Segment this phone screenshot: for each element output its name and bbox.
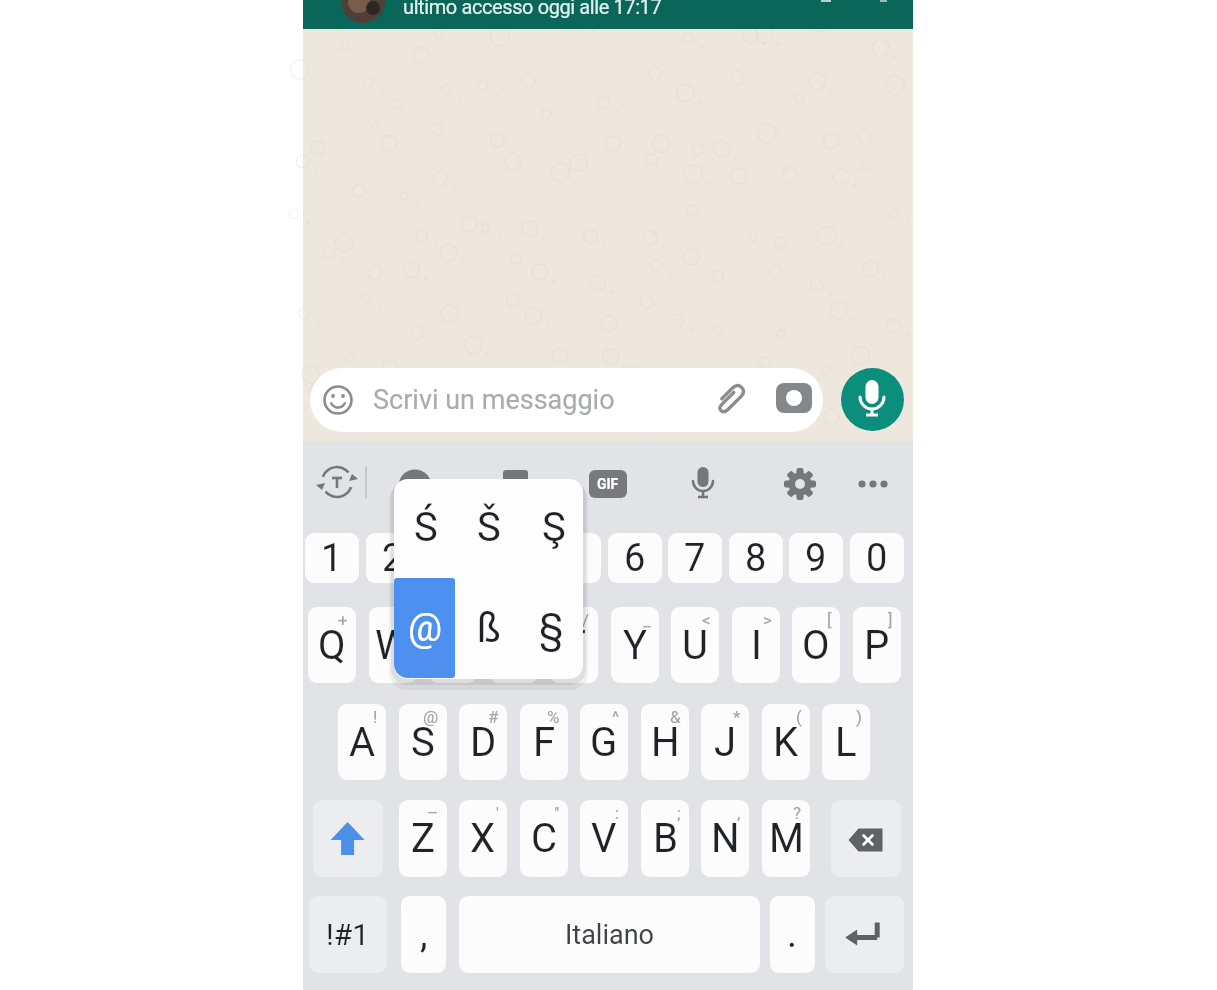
staticText: & (670, 707, 681, 727)
staticText: X (470, 815, 496, 862)
staticText: _ (643, 610, 651, 630)
staticText: V (591, 815, 617, 862)
button[interactable]: 8 (729, 533, 783, 583)
button[interactable]: 7 (668, 533, 722, 583)
button[interactable]: GIF (589, 470, 627, 498)
staticText: G (590, 719, 618, 766)
button[interactable]: B (641, 800, 689, 877)
button[interactable]: Scrivi un messaggio (310, 368, 823, 432)
button[interactable]: G (580, 704, 628, 780)
staticText: K (773, 719, 799, 766)
button[interactable]: Italiano (459, 896, 760, 973)
button[interactable]: R (490, 607, 538, 683)
button[interactable]: O (792, 607, 840, 683)
staticText: < (702, 610, 711, 630)
staticText: ^ (612, 707, 620, 727)
button[interactable]: H (641, 704, 689, 780)
staticText: 6 (624, 536, 646, 581)
staticText: B (653, 815, 678, 862)
staticText: + (338, 610, 348, 630)
button[interactable] (831, 800, 901, 877)
button[interactable]: P (853, 607, 901, 683)
staticText: – (427, 803, 439, 823)
button[interactable]: E (429, 607, 477, 683)
staticText: @ (423, 707, 439, 727)
button[interactable]: !#1 (309, 896, 387, 973)
button[interactable]: A (338, 704, 386, 780)
staticText: # (488, 707, 499, 727)
staticText: ( (796, 707, 802, 727)
button[interactable]: T (550, 607, 598, 683)
staticText: 7 (684, 536, 706, 581)
button[interactable]: X (459, 800, 507, 877)
button[interactable]: U (671, 607, 719, 683)
button[interactable]: K (762, 704, 810, 780)
button[interactable]: Z (399, 800, 447, 877)
button[interactable]: D (459, 704, 507, 780)
staticText: , (420, 912, 428, 957)
button[interactable] (825, 896, 904, 973)
button[interactable]: 6 (608, 533, 662, 583)
staticText: 9 (805, 536, 827, 581)
button[interactable] (841, 368, 904, 431)
staticText: 8 (745, 536, 767, 581)
button[interactable]: W (369, 607, 417, 683)
staticText: I (751, 622, 762, 669)
button[interactable]: M (762, 800, 810, 877)
button[interactable]: V (580, 800, 628, 877)
staticText: P (864, 622, 890, 669)
staticText: ultimo accesso oggi alle 17:17 (403, 0, 662, 18)
button[interactable]: J (701, 704, 749, 780)
staticText: W (375, 622, 411, 669)
staticText: > (763, 610, 772, 630)
staticText: Z (411, 815, 435, 862)
staticText: , (737, 803, 741, 823)
staticText: U (682, 622, 708, 669)
button[interactable]: N (701, 800, 749, 877)
button[interactable]: I (732, 607, 780, 683)
staticText: F (533, 719, 556, 766)
staticText: [ (827, 610, 832, 630)
button[interactable]: 3 (426, 533, 480, 583)
button[interactable]: 2 (366, 533, 420, 583)
staticText: 1 (321, 536, 343, 581)
staticText: S (411, 719, 435, 766)
staticText: Y (623, 622, 648, 669)
button[interactable] (313, 800, 383, 877)
staticText: 2 (382, 536, 404, 581)
button[interactable]: 0 (850, 533, 904, 583)
staticText: ] (888, 610, 893, 630)
staticText: N (711, 815, 740, 862)
button[interactable]: 4 (487, 533, 541, 583)
button[interactable]: C (520, 800, 568, 877)
staticText: GIF (597, 476, 619, 492)
button[interactable]: 1 (305, 533, 359, 583)
button[interactable]: , (401, 896, 446, 973)
staticText: ? (793, 803, 802, 823)
button[interactable]: Q (308, 607, 356, 683)
staticText: ! (373, 707, 378, 727)
staticText: Ş (542, 504, 566, 551)
button[interactable] (394, 578, 455, 678)
button[interactable]: F (520, 704, 568, 780)
button[interactable]: L (822, 704, 870, 780)
staticText: . (787, 912, 798, 957)
button[interactable]: Y (611, 607, 659, 683)
staticText: !#1 (326, 917, 370, 952)
button[interactable]: 5 (547, 533, 601, 583)
button[interactable]: S (399, 704, 447, 780)
staticText: E (442, 622, 465, 669)
button[interactable]: . (770, 896, 815, 973)
staticText: L (835, 719, 857, 766)
staticText: A (349, 719, 376, 766)
staticText: " (554, 803, 560, 823)
staticText: * (733, 707, 741, 727)
button[interactable]: 9 (789, 533, 843, 583)
staticText: O (802, 622, 830, 669)
staticText: Italiano (565, 919, 654, 951)
staticText: ; (677, 803, 681, 823)
